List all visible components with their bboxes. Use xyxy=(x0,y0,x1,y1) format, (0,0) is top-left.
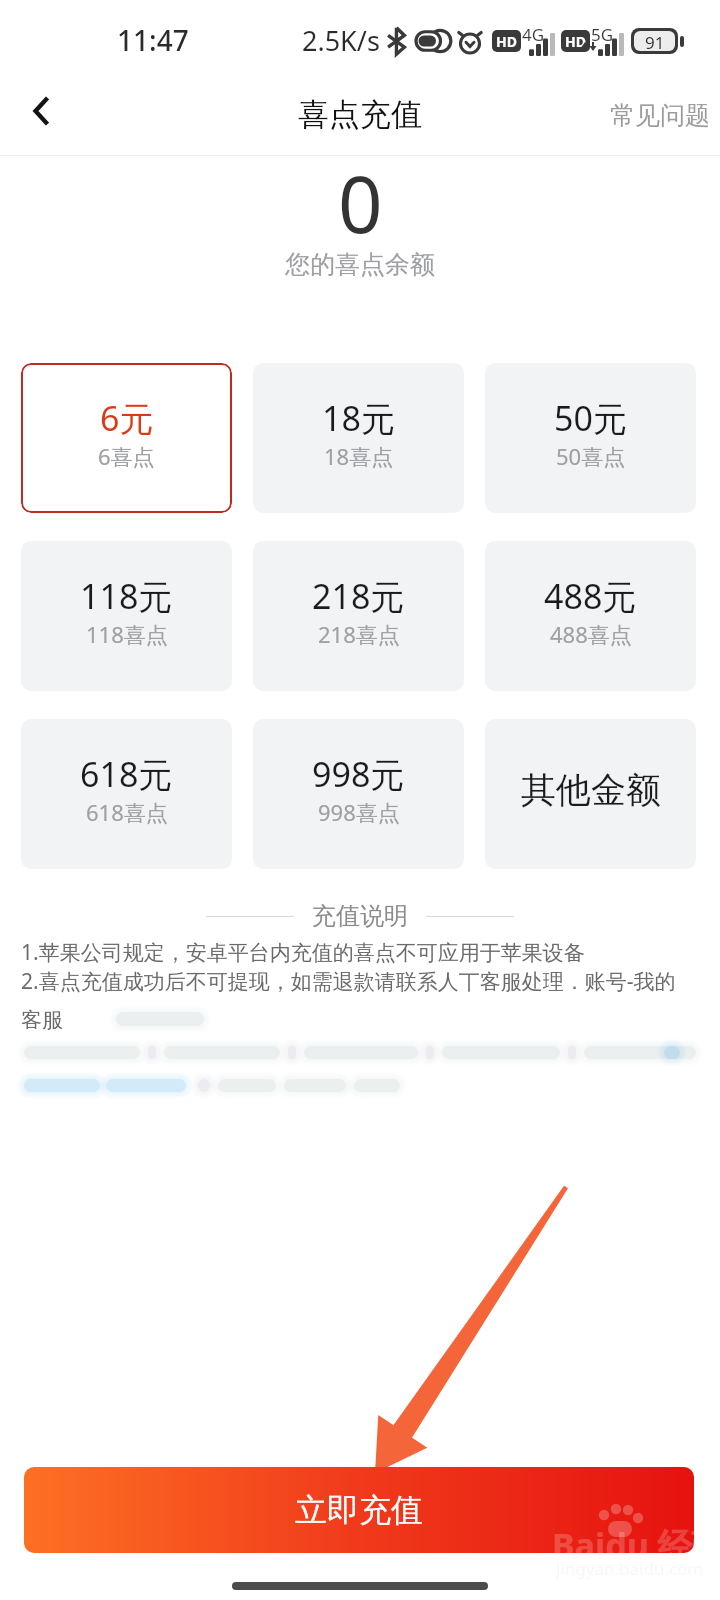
staticText: 其他金额 xyxy=(521,768,661,812)
button[interactable]: 18元 xyxy=(253,363,464,513)
staticText: 1.苹果公司规定，安卓平台内充值的喜点不可应用于苹果设备 xyxy=(21,938,585,967)
button[interactable]: 常见问题 xyxy=(606,92,714,139)
staticText: 2.喜点充值成功后不可提现，如需退款请联系人丅客服处理．账号-我的客服 xyxy=(21,967,690,1034)
staticText: HD xyxy=(565,32,586,51)
button[interactable]: 立即充值 xyxy=(24,1467,694,1553)
staticText: 11:47 xyxy=(117,21,189,59)
staticText: 218元 xyxy=(312,573,405,619)
button[interactable]: 218元 xyxy=(253,541,464,691)
staticText: 998元 xyxy=(312,751,405,797)
staticText: 218喜点 xyxy=(318,619,400,649)
staticText: 618元 xyxy=(80,751,173,797)
staticText: HD xyxy=(496,32,517,51)
staticText: 50喜点 xyxy=(556,441,626,471)
staticText: 118喜点 xyxy=(86,619,168,649)
staticText: 5G xyxy=(591,23,614,46)
button[interactable]: 50元 xyxy=(485,363,696,513)
staticText: 常见问题 xyxy=(610,100,710,131)
button[interactable]: Back xyxy=(9,80,71,142)
staticText: 2.5K/s xyxy=(302,22,380,59)
staticText: 18元 xyxy=(322,395,395,441)
staticText: 118元 xyxy=(80,573,173,619)
staticText: 充值说明 xyxy=(312,901,408,931)
button[interactable]: 118元 xyxy=(21,541,232,691)
staticText: 488喜点 xyxy=(550,619,632,649)
button[interactable]: 998元 xyxy=(253,719,464,869)
staticText: 0 xyxy=(338,150,383,256)
staticText: 618喜点 xyxy=(86,797,168,827)
staticText: 喜点充值 xyxy=(298,95,422,134)
staticText: 488元 xyxy=(544,573,637,619)
staticText: 998喜点 xyxy=(318,797,400,827)
staticText: 6喜点 xyxy=(98,441,155,471)
button[interactable]: 其他金额 xyxy=(485,719,696,869)
staticText: Baidu 经验 xyxy=(552,1522,720,1568)
staticText: 4G xyxy=(522,23,545,46)
staticText: 18喜点 xyxy=(324,441,394,471)
staticText: 91 xyxy=(645,31,665,51)
button[interactable]: 6元 xyxy=(21,363,232,513)
button[interactable]: 488元 xyxy=(485,541,696,691)
staticText: 立即充值 xyxy=(295,1490,423,1530)
staticText: 6元 xyxy=(100,395,154,441)
button[interactable]: 618元 xyxy=(21,719,232,869)
staticText: 50元 xyxy=(554,395,627,441)
staticText: 您的喜点余额 xyxy=(285,249,435,280)
